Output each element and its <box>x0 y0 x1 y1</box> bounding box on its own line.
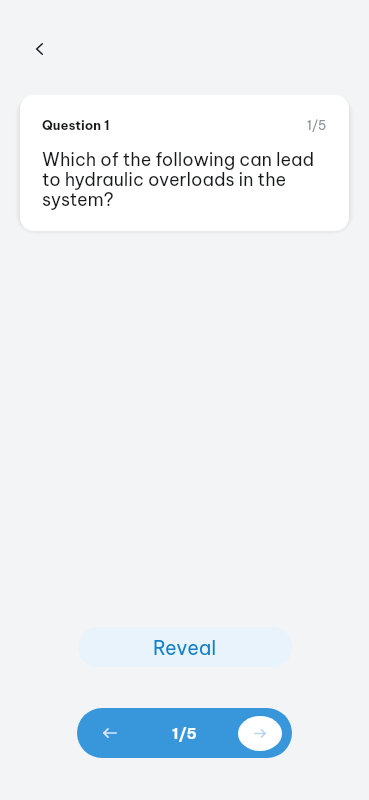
button[interactable]: Back <box>18 28 60 70</box>
staticText: Question 1 <box>42 117 110 133</box>
button[interactable]: Question 1 <box>20 95 349 231</box>
staticText: Which of the following can lead to hydra… <box>42 150 327 210</box>
staticText: 1/5 <box>172 724 197 743</box>
staticText: 1/5 <box>307 117 327 133</box>
button[interactable]: Next question <box>238 716 282 751</box>
staticText: Reveal <box>153 635 217 660</box>
button[interactable]: Reveal <box>78 627 292 667</box>
button[interactable]: Previous question <box>97 720 123 746</box>
